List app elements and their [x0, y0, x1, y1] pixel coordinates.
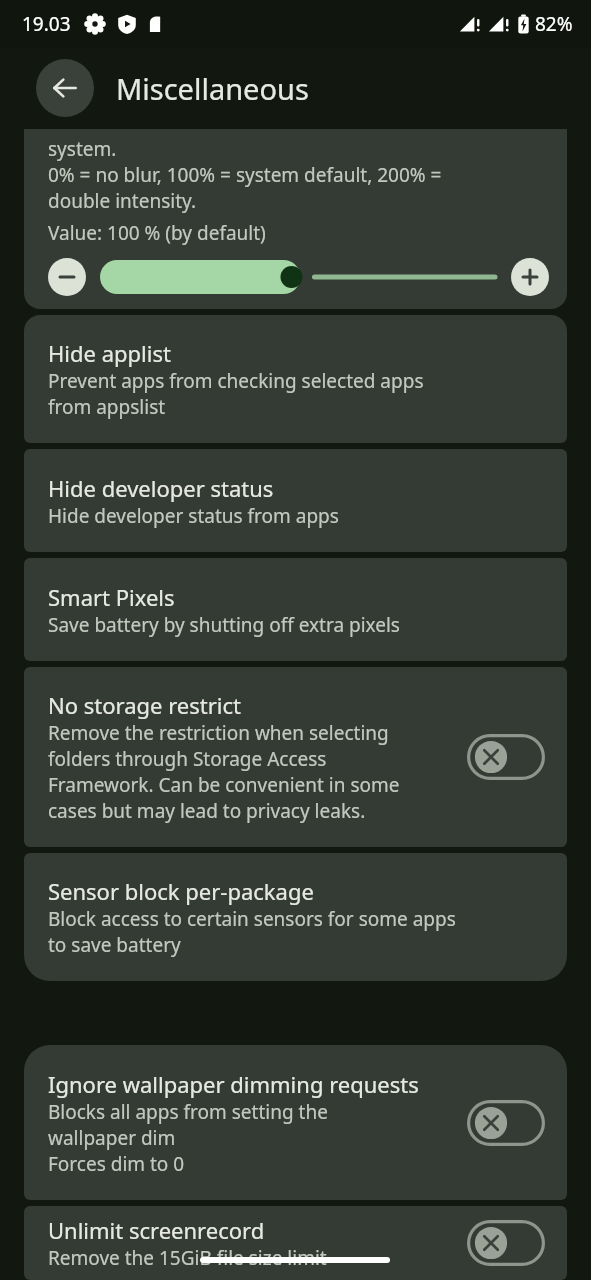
staticText: system. — [48, 136, 117, 162]
button[interactable]: Ignore wallpaper dimming requests — [24, 1045, 567, 1200]
button[interactable]: Unlimit screenrecord — [24, 1206, 567, 1280]
staticText: Forces dim to 0 — [48, 1151, 185, 1177]
staticText: cases but may lead to privacy leaks. — [48, 798, 366, 824]
button[interactable]: Decrease — [48, 258, 86, 296]
staticText: Remove the 15GiB file size limit — [48, 1245, 327, 1271]
staticText: Hide applist — [48, 338, 171, 368]
button[interactable]: Hide applist — [24, 315, 567, 443]
button[interactable]: Toggle off — [467, 1100, 545, 1146]
staticText: Hide developer status from apps — [48, 503, 339, 529]
button[interactable]: No storage restrict — [24, 667, 567, 847]
staticText: Smart Pixels — [48, 582, 175, 612]
staticText: wallpaper dim — [48, 1125, 176, 1151]
staticText: Remove the restriction when selecting — [48, 720, 389, 746]
staticText: 19.03 — [22, 11, 71, 37]
staticText: Save battery by shutting off extra pixel… — [48, 612, 400, 638]
staticText: Block access to certain sensors for some… — [48, 906, 456, 932]
staticText: folders through Storage Access — [48, 746, 327, 772]
staticText: double intensity. — [48, 188, 197, 214]
staticText: 0% = no blur, 100% = system default, 200… — [48, 162, 442, 188]
staticText: from appslist — [48, 394, 166, 420]
button[interactable]: Smart Pixels — [24, 558, 567, 661]
button[interactable]: Toggle off — [467, 734, 545, 780]
staticText: to save battery — [48, 932, 181, 958]
staticText: Value: 100 % (by default) — [48, 220, 266, 246]
staticText: 82% — [535, 11, 573, 37]
staticText: Sensor block per-package — [48, 876, 314, 906]
button[interactable]: Hide developer status — [24, 449, 567, 552]
button[interactable]: system. — [24, 129, 567, 309]
staticText: Hide developer status — [48, 473, 274, 503]
button[interactable]: Increase — [511, 258, 549, 296]
staticText: Ignore wallpaper dimming requests — [48, 1069, 419, 1099]
button[interactable]: Back — [36, 59, 94, 117]
staticText: No storage restrict — [48, 690, 241, 720]
staticText: Blocks all apps from setting the — [48, 1099, 328, 1125]
staticText: Miscellaneous — [116, 69, 309, 108]
button[interactable]: Sensor block per-package — [24, 853, 567, 981]
staticText: Framework. Can be convenient in some — [48, 772, 400, 798]
button[interactable]: Toggle off — [467, 1220, 545, 1266]
staticText: Unlimit screenrecord — [48, 1215, 265, 1245]
staticText: Prevent apps from checking selected apps — [48, 368, 424, 394]
